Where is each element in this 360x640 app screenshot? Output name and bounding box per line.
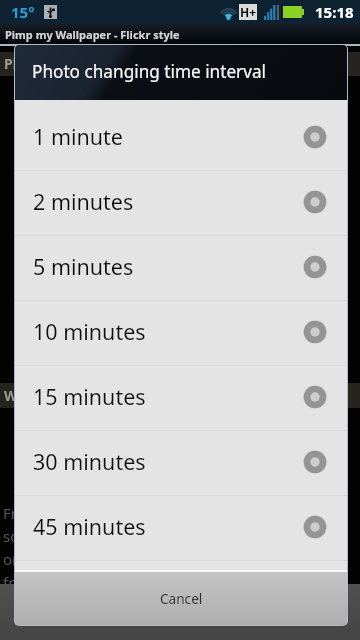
button[interactable]: 15 minutes (15, 366, 347, 431)
staticText: 45 minutes (33, 512, 146, 541)
button[interactable]: 1 minute (15, 106, 347, 171)
staticText: 1 minute (33, 122, 123, 151)
other: HSPA+ network (239, 4, 257, 20)
staticText: 15:18 (315, 2, 354, 22)
staticText: WiFi (4, 386, 34, 405)
staticText: 15 minutes (33, 382, 146, 411)
staticText: 30 minutes (33, 447, 146, 476)
staticText: 15° (11, 2, 35, 22)
other: Battery (283, 6, 304, 18)
button[interactable]: 5 minutes (15, 236, 347, 301)
button[interactable]: 2 minutes (15, 171, 347, 236)
button[interactable]: Cancel (15, 572, 347, 625)
staticText: Photo changing time interval (32, 60, 267, 83)
staticText: Cancel (160, 589, 203, 608)
staticText: 5 minutes (33, 252, 134, 281)
staticText: Questions? Mail me! (3, 595, 146, 615)
staticText: Pimp my Wallpaper - Flickr style (5, 27, 180, 42)
other: USB connected (44, 5, 57, 19)
staticText: 10 minutes (33, 317, 146, 346)
staticText: Photo source (4, 54, 96, 73)
button[interactable]: 30 minutes (15, 431, 347, 496)
button[interactable]: 45 minutes (15, 496, 347, 561)
other: Signal strength (264, 5, 279, 20)
staticText: 2 minutes (33, 187, 134, 216)
staticText: H+ (240, 4, 257, 20)
staticText: Free version is ad supported, (3, 503, 207, 523)
other: Wi-Fi (220, 5, 237, 20)
staticText: only in paid version. Please buy (3, 549, 224, 569)
button[interactable]: 10 minutes (15, 301, 347, 366)
staticText: from the Market to support us! (3, 572, 221, 592)
staticText: some features are disabled - (3, 526, 203, 546)
